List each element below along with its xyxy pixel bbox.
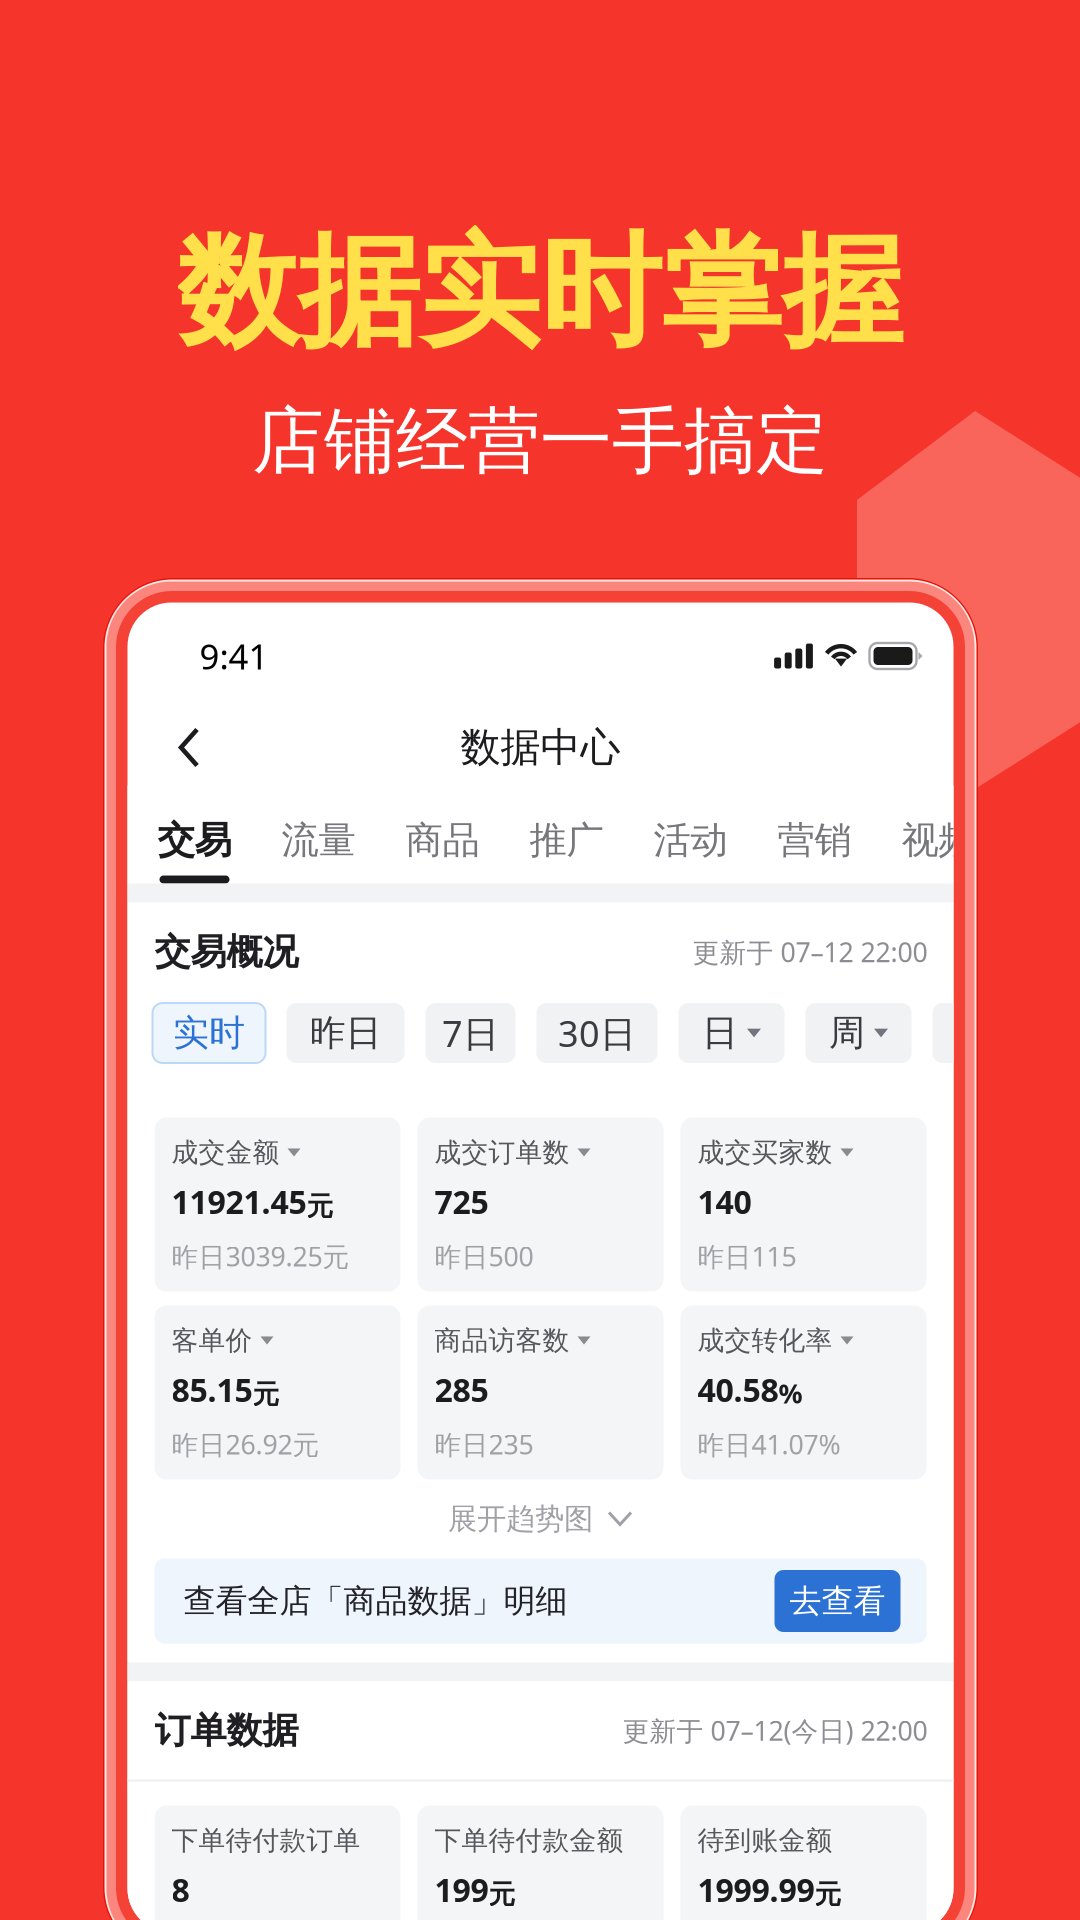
staticText: 数据中心: [460, 723, 620, 772]
button[interactable]: 7日: [425, 1003, 515, 1063]
button[interactable]: 展开趋势图: [127, 1479, 953, 1558]
staticText: 725: [434, 1180, 488, 1223]
staticText: 待到账金额: [697, 1824, 832, 1857]
button[interactable]: 昨日: [286, 1003, 404, 1063]
staticText: 更新于 07–12 22:00: [692, 934, 927, 970]
staticText: 查看全店「商品数据」明细: [183, 1581, 567, 1621]
staticText: 活动: [653, 817, 727, 863]
staticText: %: [778, 1375, 802, 1411]
staticText: 昨日115: [697, 1238, 796, 1274]
staticText: 视频: [901, 817, 975, 863]
staticText: 数据实时掌握: [177, 218, 903, 367]
staticText: 推广: [529, 817, 603, 863]
staticText: 实时: [173, 1011, 245, 1055]
staticText: 交易概况: [154, 930, 298, 974]
staticText: 昨日3039.25元: [171, 1238, 349, 1274]
staticText: 月: [956, 1011, 992, 1055]
staticText: 199: [434, 1868, 488, 1911]
staticText: 140: [697, 1180, 751, 1223]
staticText: 40.58: [697, 1368, 778, 1411]
staticText: 元: [306, 1190, 333, 1223]
button[interactable]: 30日: [536, 1003, 657, 1063]
button[interactable]: 营销: [764, 785, 864, 883]
staticText: 周: [829, 1011, 865, 1055]
button[interactable]: 查看全店「商品数据」明细: [154, 1558, 926, 1643]
staticText: 营销: [777, 817, 851, 863]
button[interactable]: 推广: [516, 785, 616, 883]
staticText: 客单价: [171, 1324, 252, 1357]
staticText: 1999.99: [697, 1868, 814, 1911]
staticText: 交易: [157, 817, 231, 863]
staticText: 商品: [405, 817, 479, 863]
staticText: 30日: [558, 1009, 636, 1057]
staticText: 商品访客数: [434, 1324, 569, 1357]
button[interactable]: 月: [932, 1003, 1038, 1063]
staticText: 昨日500: [434, 1238, 533, 1274]
button[interactable]: 周: [805, 1003, 911, 1063]
staticText: 昨日26.92元: [171, 1426, 319, 1462]
staticText: 285: [434, 1368, 488, 1411]
staticText: 流量: [281, 817, 355, 863]
staticText: 成交买家数: [697, 1136, 832, 1169]
staticText: 9:41: [199, 633, 268, 679]
button[interactable]: 交易: [144, 785, 244, 883]
button[interactable]: 日: [678, 1003, 784, 1063]
staticText: 订单数据: [154, 1708, 298, 1753]
staticText: 昨日: [309, 1011, 381, 1055]
staticText: 店铺经营一手搞定: [252, 397, 828, 485]
staticText: 7日: [442, 1009, 499, 1057]
button[interactable]: 流量: [268, 785, 368, 883]
button[interactable]: 实时: [152, 1003, 265, 1063]
staticText: 85.15: [171, 1368, 252, 1411]
staticText: 成交金额: [171, 1136, 279, 1169]
staticText: 成交订单数: [434, 1136, 569, 1169]
button[interactable]: 视频: [888, 785, 988, 883]
staticText: 昨日235: [434, 1426, 533, 1462]
staticText: 8: [171, 1868, 189, 1911]
staticText: 日: [702, 1011, 738, 1055]
staticText: 元: [252, 1378, 279, 1411]
button[interactable]: 商品: [392, 785, 492, 883]
staticText: 去查看: [789, 1581, 885, 1621]
staticText: 元: [488, 1878, 515, 1911]
staticText: 元: [814, 1878, 841, 1911]
staticText: 11921.45: [171, 1180, 306, 1223]
staticText: 下单待付款金额: [434, 1824, 623, 1857]
staticText: 下单待付款订单: [171, 1824, 360, 1857]
staticText: 展开趋势图: [448, 1501, 593, 1537]
staticText: 昨日41.07%: [697, 1426, 840, 1462]
staticText: 成交转化率: [697, 1324, 832, 1357]
staticText: 更新于 07–12(今日) 22:00: [622, 1713, 927, 1748]
button[interactable]: 活动: [640, 785, 740, 883]
button[interactable]: Back: [127, 709, 251, 785]
